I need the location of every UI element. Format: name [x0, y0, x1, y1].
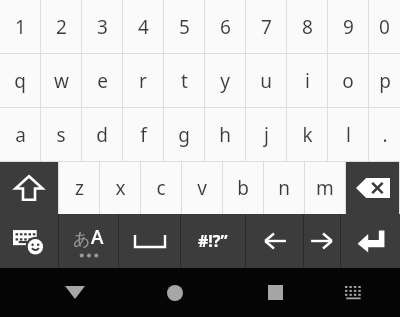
button[interactable]: o [328, 54, 368, 107]
button[interactable]: a [0, 108, 40, 161]
staticText: 9 [343, 14, 354, 40]
button[interactable]: 3 [82, 0, 122, 53]
button[interactable]: Shift [0, 162, 58, 214]
staticText: f [140, 122, 147, 148]
button[interactable]: . [369, 108, 400, 161]
staticText: y [220, 68, 230, 94]
staticText: k [302, 122, 313, 148]
button[interactable]: p [369, 54, 400, 107]
staticText: l [346, 122, 351, 148]
button[interactable]: u [246, 54, 286, 107]
button[interactable]: Symbols [181, 214, 245, 268]
staticText: A [91, 224, 104, 250]
button[interactable]: Backspace [346, 162, 399, 214]
staticText: 5 [179, 14, 190, 40]
button[interactable]: m [305, 162, 345, 214]
button[interactable]: Enter [341, 214, 400, 268]
staticText: b [237, 175, 249, 201]
button[interactable]: f [123, 108, 163, 161]
button[interactable]: 4 [123, 0, 163, 53]
button[interactable]: l [328, 108, 368, 161]
button[interactable]: h [205, 108, 245, 161]
staticText: z [75, 175, 84, 201]
staticText: #!?” [198, 230, 228, 252]
staticText: w [54, 68, 69, 94]
staticText: 7 [261, 14, 272, 40]
staticText: 4 [138, 14, 149, 40]
staticText: m [316, 175, 334, 201]
button[interactable]: r [123, 54, 163, 107]
button[interactable]: 9 [328, 0, 368, 53]
button[interactable]: Space [119, 214, 180, 268]
staticText: 2 [56, 14, 67, 40]
staticText: q [14, 68, 26, 94]
button[interactable]: Change keyboard [333, 268, 377, 317]
button[interactable]: Cursor right [304, 214, 340, 268]
staticText: u [260, 68, 272, 94]
button[interactable]: i [287, 54, 327, 107]
staticText: p [379, 68, 391, 94]
button[interactable]: v [182, 162, 222, 214]
button[interactable]: c [141, 162, 181, 214]
button[interactable]: g [164, 108, 204, 161]
button[interactable]: Hide keyboard [53, 268, 97, 317]
staticText: h [219, 122, 231, 148]
staticText: 1 [15, 14, 26, 40]
button[interactable]: Switch language [59, 214, 118, 268]
staticText: d [96, 122, 108, 148]
staticText: j [264, 122, 269, 148]
staticText: o [342, 68, 354, 94]
staticText: e [97, 68, 108, 94]
button[interactable]: j [246, 108, 286, 161]
button[interactable]: e [82, 54, 122, 107]
staticText: s [56, 122, 66, 148]
button[interactable]: 5 [164, 0, 204, 53]
button[interactable]: s [41, 108, 81, 161]
staticText: c [156, 175, 166, 201]
staticText: x [115, 175, 126, 201]
button[interactable]: b [223, 162, 263, 214]
button[interactable]: Home [153, 268, 197, 317]
button[interactable]: z [59, 162, 99, 214]
staticText: 6 [220, 14, 231, 40]
staticText: a [15, 122, 26, 148]
staticText: 3 [97, 14, 108, 40]
button[interactable]: 8 [287, 0, 327, 53]
button[interactable]: t [164, 54, 204, 107]
button[interactable]: q [0, 54, 40, 107]
staticText: 8 [302, 14, 313, 40]
button[interactable]: n [264, 162, 304, 214]
staticText: r [139, 68, 147, 94]
staticText: i [305, 68, 310, 94]
button[interactable]: 7 [246, 0, 286, 53]
button[interactable]: Emoji keyboard [0, 214, 58, 268]
button[interactable]: Cursor left [246, 214, 303, 268]
staticText: g [178, 122, 190, 148]
staticText: あ [73, 229, 91, 250]
button[interactable]: 6 [205, 0, 245, 53]
button[interactable]: Recents [253, 268, 297, 317]
staticText: v [197, 175, 207, 201]
button[interactable]: 1 [0, 0, 40, 53]
staticText: t [181, 68, 188, 94]
button[interactable]: k [287, 108, 327, 161]
button[interactable]: 2 [41, 0, 81, 53]
staticText: 0 [379, 14, 390, 40]
button[interactable]: x [100, 162, 140, 214]
button[interactable]: w [41, 54, 81, 107]
button[interactable]: d [82, 108, 122, 161]
staticText: . [382, 122, 388, 148]
button[interactable]: y [205, 54, 245, 107]
button[interactable]: 0 [369, 0, 400, 53]
staticText: n [278, 175, 290, 201]
